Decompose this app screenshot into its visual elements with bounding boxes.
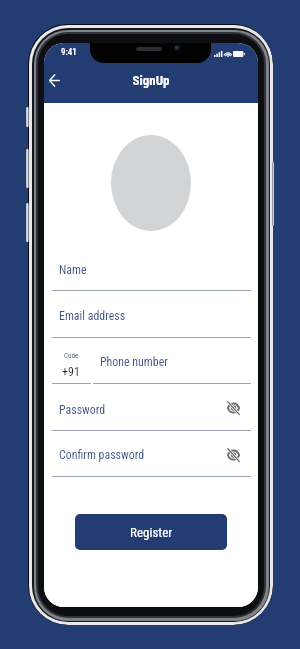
staticText: Name bbox=[59, 263, 87, 277]
button[interactable]: Toggle password visibility bbox=[222, 444, 244, 466]
staticText: +91 bbox=[62, 365, 80, 379]
staticText: Code bbox=[64, 352, 79, 360]
button[interactable]: Toggle password visibility bbox=[222, 397, 244, 419]
staticText: Phone number bbox=[100, 355, 168, 369]
staticText: SignUp bbox=[44, 73, 258, 88]
staticText: Password bbox=[59, 403, 106, 417]
staticText: Register bbox=[130, 525, 173, 540]
button[interactable]: Register bbox=[75, 514, 227, 550]
staticText: Confirm password bbox=[59, 448, 145, 462]
staticText: Email address bbox=[59, 309, 126, 323]
button[interactable]: Back bbox=[44, 67, 67, 93]
staticText: 9:41 bbox=[61, 47, 77, 58]
